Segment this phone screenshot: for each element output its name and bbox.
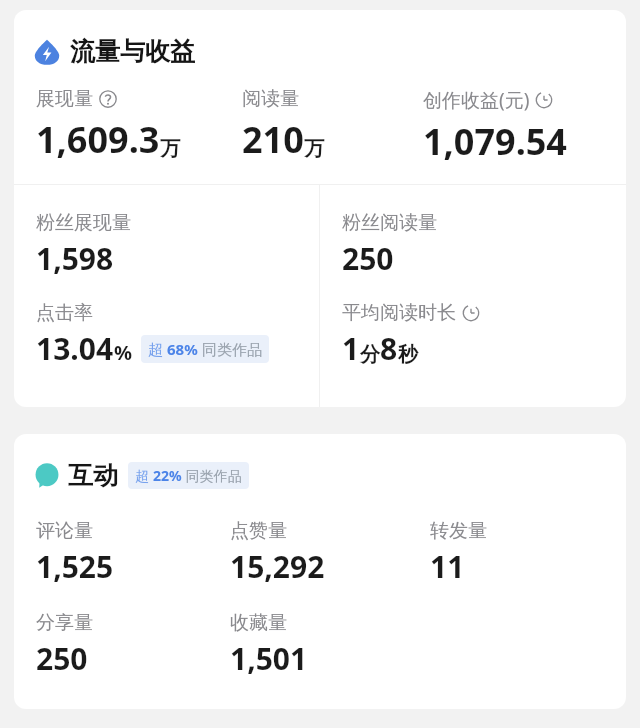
- button[interactable]: 收藏量: [230, 611, 430, 679]
- other: Traffic and revenue: [34, 39, 60, 65]
- button[interactable]: Traffic and revenue: [14, 10, 626, 73]
- button[interactable]: Interaction: [14, 434, 626, 491]
- staticText: 流量与收益: [70, 36, 195, 67]
- staticText: 250: [342, 238, 394, 279]
- staticText: 平均阅读时长: [342, 301, 456, 325]
- staticText: 超: [135, 466, 153, 485]
- staticText: 11: [430, 546, 465, 587]
- staticText: 22%: [153, 466, 182, 485]
- staticText: 互动: [68, 460, 118, 491]
- staticText: 8: [380, 328, 398, 369]
- other: Time info: [462, 304, 480, 322]
- staticText: 点击率: [36, 301, 93, 325]
- staticText: 万: [160, 136, 180, 161]
- button[interactable]: 分享量: [36, 611, 230, 679]
- staticText: 同类作品: [182, 466, 242, 485]
- staticText: 超: [148, 339, 167, 359]
- button[interactable]: 阅读量: [242, 87, 423, 164]
- button[interactable]: 转发量: [430, 519, 614, 587]
- staticText: 250: [36, 638, 88, 679]
- button[interactable]: 超: [141, 335, 269, 363]
- staticText: 秒: [398, 342, 418, 367]
- staticText: 阅读量: [242, 87, 299, 111]
- staticText: 粉丝展现量: [36, 211, 131, 235]
- staticText: 68%: [167, 339, 198, 359]
- button[interactable]: 创作收益(元): [423, 87, 614, 166]
- staticText: 展现量: [36, 87, 93, 111]
- staticText: 分享量: [36, 611, 93, 635]
- staticText: 点赞量: [230, 519, 287, 543]
- button[interactable]: 粉丝展现量: [14, 185, 319, 407]
- button[interactable]: 展现量: [36, 87, 242, 164]
- staticText: 1,598: [36, 238, 114, 279]
- staticText: 1,501: [230, 638, 308, 679]
- staticText: 万: [304, 136, 324, 161]
- staticText: 13.04: [36, 328, 114, 369]
- other: Help: [99, 90, 117, 108]
- staticText: 粉丝阅读量: [342, 211, 437, 235]
- other: Interaction: [34, 463, 60, 489]
- staticText: 15,292: [230, 546, 325, 587]
- staticText: %: [114, 339, 133, 366]
- staticText: 评论量: [36, 519, 93, 543]
- button[interactable]: 评论量: [36, 519, 230, 587]
- staticText: 1,079.54: [423, 117, 567, 166]
- staticText: 收藏量: [230, 611, 287, 635]
- staticText: 同类作品: [198, 339, 262, 359]
- button[interactable]: 粉丝阅读量: [320, 185, 626, 407]
- button[interactable]: 超: [128, 462, 249, 489]
- staticText: 1,609.3: [36, 115, 160, 164]
- other: Time info: [535, 91, 553, 109]
- button[interactable]: 点赞量: [230, 519, 430, 587]
- staticText: 分: [360, 342, 380, 367]
- staticText: 创作收益(元): [423, 87, 530, 113]
- staticText: 210: [242, 115, 304, 164]
- staticText: 1: [342, 328, 360, 369]
- staticText: 1,525: [36, 546, 114, 587]
- staticText: 转发量: [430, 519, 487, 543]
